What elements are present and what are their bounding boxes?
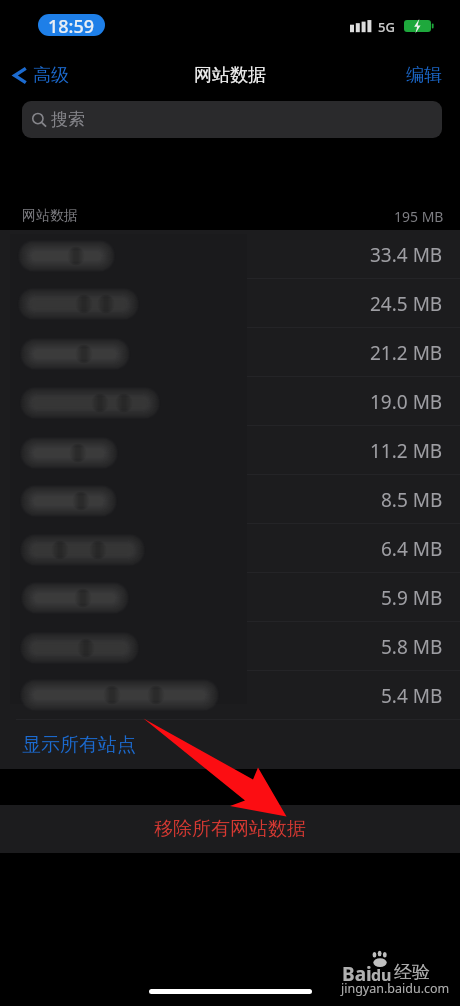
staticText: 21.2 MB (370, 340, 443, 366)
staticText: 5.4 MB (381, 683, 443, 709)
staticText: 24.5 MB (370, 291, 443, 317)
button[interactable]: 8.5 MB (0, 475, 460, 524)
button[interactable]: 返回 高级 (12, 64, 69, 87)
staticText: jingyan.baidu.com (341, 980, 450, 997)
staticText: 经验 (394, 961, 430, 984)
staticText: 8.5 MB (381, 487, 443, 513)
staticText: du (371, 964, 392, 986)
staticText: 显示所有站点 (22, 733, 136, 757)
button[interactable]: 11.2 MB (0, 426, 460, 475)
button[interactable]: 5.4 MB (0, 671, 460, 720)
staticText: 高级 (33, 64, 69, 87)
staticText: 搜索 (51, 109, 85, 130)
staticText: 5G (378, 18, 395, 36)
staticText: 33.4 MB (370, 242, 443, 268)
button[interactable]: 19.0 MB (0, 377, 460, 426)
staticText: 19.0 MB (370, 389, 443, 415)
staticText: 6.4 MB (381, 536, 443, 562)
staticText: 网站数据 (194, 64, 266, 87)
button[interactable]: 6.4 MB (0, 524, 460, 573)
staticText: 移除所有网站数据 (154, 817, 306, 841)
button[interactable]: 编辑 (406, 64, 442, 87)
staticText: 195 MB (394, 207, 444, 226)
button[interactable]: 5.9 MB (0, 573, 460, 622)
staticText: 18:59 (48, 14, 95, 36)
button[interactable]: 5.8 MB (0, 622, 460, 671)
button[interactable]: 21.2 MB (0, 328, 460, 377)
button[interactable]: 24.5 MB (0, 279, 460, 328)
staticText: Bai (342, 961, 372, 987)
button[interactable]: 移除所有网站数据 (0, 805, 460, 853)
staticText: 5.8 MB (381, 634, 443, 660)
button[interactable]: 搜索 (22, 101, 442, 138)
staticText: 11.2 MB (370, 438, 443, 464)
staticText: 网站数据 (22, 207, 78, 225)
button[interactable]: 33.4 MB (0, 230, 460, 279)
button[interactable]: 显示所有站点 (0, 720, 460, 769)
staticText: 5.9 MB (381, 585, 443, 611)
